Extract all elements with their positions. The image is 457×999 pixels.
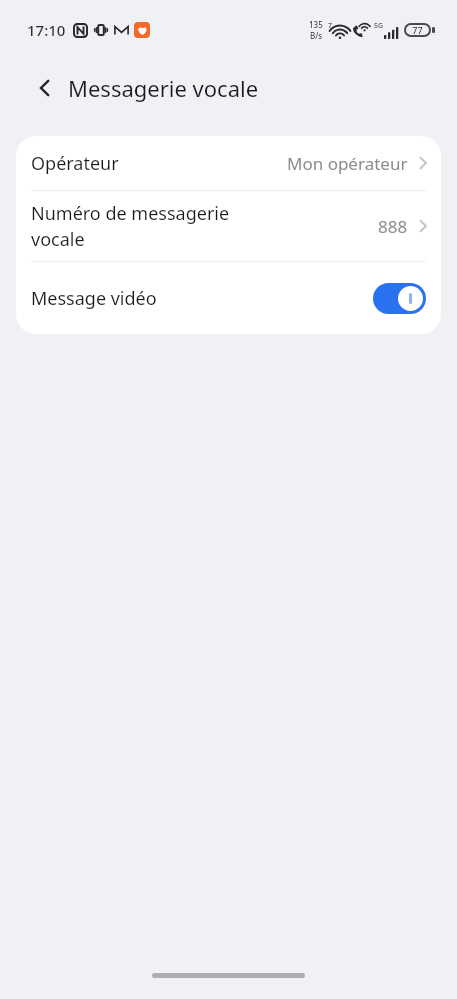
staticText: B/s [310,30,323,41]
staticText: 135 [309,19,323,30]
staticText: Numéro de messagerie vocale [31,201,276,251]
staticText: 7 [328,21,333,31]
staticText: Messagerie vocale [68,73,259,103]
staticText: Mon opérateur [287,152,408,175]
button[interactable]: Message vidéo toggle [373,283,426,314]
button[interactable]: Numéro de messagerie vocale [16,191,441,261]
staticText: Opérateur [31,151,119,176]
staticText: 77 [412,24,423,36]
button[interactable]: Back [21,64,69,112]
button[interactable]: Opérateur [16,136,441,190]
staticText: 5G [374,21,384,31]
button[interactable]: Message vidéo [16,262,441,334]
staticText: 17:10 [27,20,66,40]
staticText: 888 [378,215,408,238]
staticText: Message vidéo [31,286,157,311]
